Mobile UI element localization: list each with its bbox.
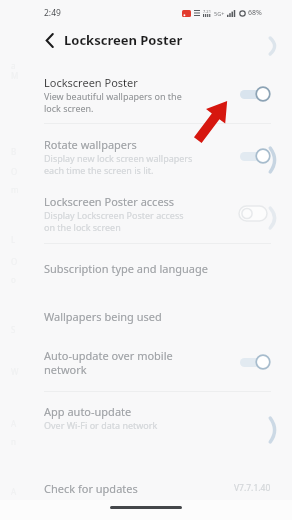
staticText: Auto-update over mobile network	[44, 348, 173, 377]
button[interactable]: Subscription type and language	[0, 244, 292, 292]
button[interactable]: Wallpapers being used	[0, 292, 292, 340]
button[interactable]: Rotate wallpapers	[0, 131, 292, 181]
staticText: lock screen.	[44, 102, 94, 114]
staticText: Lockscreen Poster	[64, 31, 183, 49]
button[interactable]: Check for updates	[0, 476, 292, 500]
button[interactable]: Lockscreen Poster access	[0, 189, 292, 237]
button[interactable]: Back	[40, 30, 60, 50]
staticText: Rotate wallpapers	[44, 137, 137, 152]
button[interactable]: Switch on	[237, 85, 271, 103]
button[interactable]: Lockscreen Poster	[0, 69, 292, 119]
staticText: 5G+	[214, 10, 225, 17]
button[interactable]: App auto-update	[0, 399, 292, 435]
staticText: 68%	[248, 8, 262, 18]
staticText: Lockscreen Poster access	[44, 194, 175, 209]
staticText: each time the screen is lit.	[44, 164, 154, 176]
staticText: 2:49	[44, 7, 61, 19]
staticText: Over Wi-Fi or data network	[44, 419, 158, 431]
staticText: Display new lock screen wallpapers	[44, 152, 193, 164]
staticText: V7.7.1.40	[234, 482, 271, 494]
staticText: Lockscreen Poster	[44, 75, 138, 90]
staticText: Check for updates	[44, 481, 138, 496]
staticText: App auto-update	[44, 404, 132, 419]
staticText: Display Lockscreen Poster access	[44, 209, 184, 221]
staticText: 7.21	[203, 9, 211, 14]
staticText: Wallpapers being used	[44, 309, 162, 324]
staticText: on the lock screen	[44, 221, 121, 233]
staticText: View beautiful wallpapers on the	[44, 90, 182, 102]
button[interactable]: Auto-update over mobile network	[0, 340, 292, 384]
staticText: Subscription type and language	[44, 261, 208, 276]
button[interactable]: Switch off	[237, 204, 271, 222]
button[interactable]: Switch on	[237, 353, 271, 371]
button[interactable]: Switch on	[237, 147, 271, 165]
